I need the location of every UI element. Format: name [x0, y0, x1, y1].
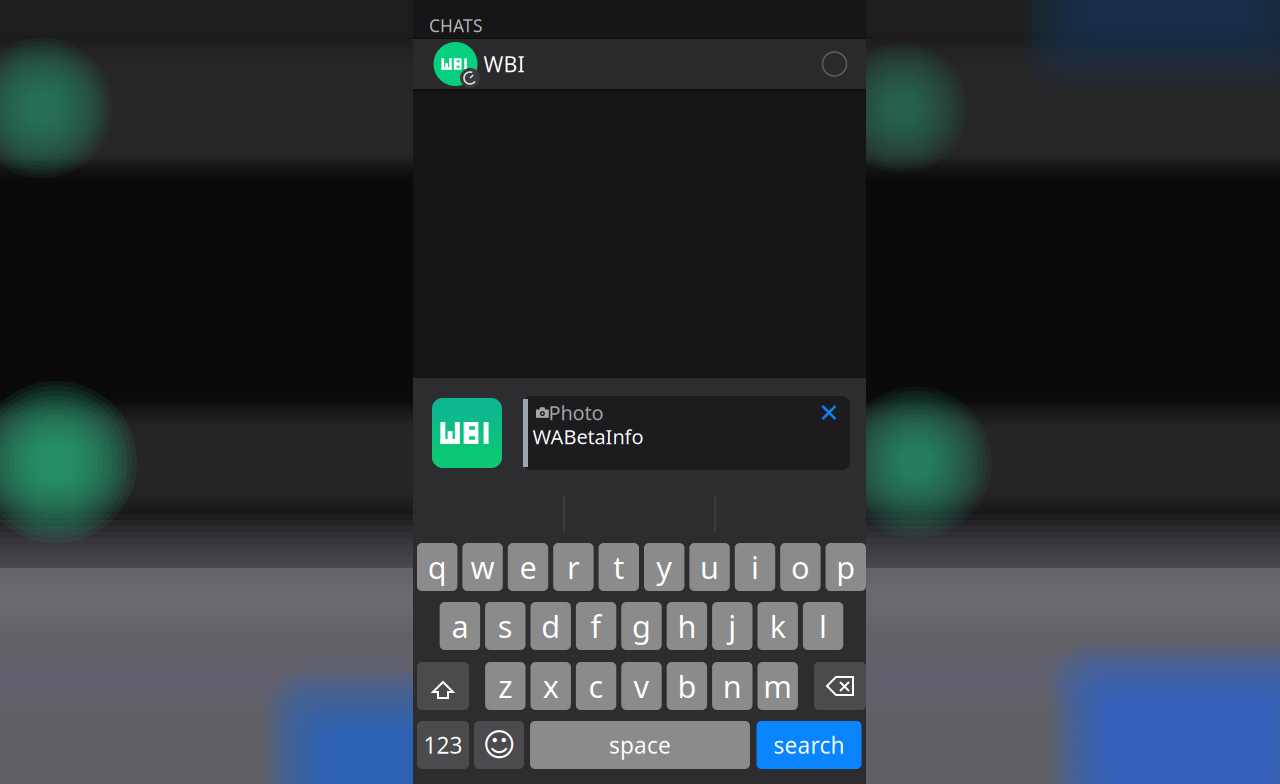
button[interactable]: m: [757, 662, 798, 710]
staticText: g: [632, 606, 651, 646]
button[interactable]: x: [530, 662, 571, 710]
button[interactable]: z: [485, 662, 525, 710]
button[interactable]: j: [712, 602, 752, 650]
button[interactable]: u: [689, 543, 730, 591]
staticText: 123: [423, 730, 462, 760]
button[interactable]: w: [462, 543, 503, 591]
button[interactable]: i: [735, 543, 775, 591]
staticText: k: [770, 606, 786, 646]
button[interactable]: r: [553, 543, 594, 591]
staticText: ✕: [818, 399, 839, 427]
staticText: WBI: [483, 50, 524, 78]
button[interactable]: Remove attachment: [814, 398, 844, 428]
staticText: d: [541, 606, 560, 646]
staticText: p: [836, 547, 855, 587]
button[interactable]: q: [417, 543, 457, 591]
button[interactable]: g: [621, 602, 662, 650]
staticText: n: [723, 666, 742, 706]
staticText: i: [751, 547, 759, 587]
staticText: t: [613, 547, 624, 587]
staticText: ☺: [482, 727, 515, 763]
staticText: a: [451, 606, 468, 646]
staticText: z: [498, 666, 512, 706]
button[interactable]: s: [485, 602, 525, 650]
button[interactable]: k: [757, 602, 798, 650]
staticText: Photo: [548, 399, 603, 426]
button[interactable]: c: [576, 662, 616, 710]
staticText: CHATS: [429, 14, 483, 37]
staticText: w: [471, 547, 495, 587]
button[interactable]: Emoji: [474, 721, 524, 769]
button[interactable]: l: [803, 602, 843, 650]
staticText: b: [677, 666, 696, 706]
button[interactable]: y: [644, 543, 684, 591]
button[interactable]: d: [530, 602, 571, 650]
staticText: WABetaInfo: [532, 423, 643, 450]
button[interactable]: n: [712, 662, 752, 710]
staticText: o: [791, 547, 810, 587]
button[interactable]: Delete: [814, 662, 866, 710]
staticText: search: [773, 730, 844, 760]
staticText: q: [428, 547, 447, 587]
staticText: l: [819, 606, 827, 646]
button[interactable]: b: [667, 662, 707, 710]
button[interactable]: a: [440, 602, 480, 650]
button[interactable]: WBI: [413, 39, 866, 89]
button[interactable]: search: [756, 721, 861, 769]
button[interactable]: o: [780, 543, 821, 591]
staticText: e: [519, 547, 536, 587]
staticText: f: [591, 606, 602, 646]
staticText: r: [567, 547, 580, 587]
staticText: v: [633, 666, 649, 706]
button[interactable]: t: [599, 543, 639, 591]
button[interactable]: space: [530, 721, 750, 769]
button[interactable]: h: [667, 602, 707, 650]
button[interactable]: v: [621, 662, 662, 710]
staticText: y: [656, 547, 672, 587]
staticText: space: [609, 730, 671, 760]
staticText: m: [763, 666, 792, 706]
staticText: x: [543, 666, 559, 706]
button[interactable]: f: [576, 602, 616, 650]
staticText: u: [700, 547, 719, 587]
button[interactable]: 123: [417, 721, 469, 769]
staticText: h: [677, 606, 696, 646]
staticText: j: [728, 606, 736, 646]
staticText: c: [589, 666, 604, 706]
button[interactable]: e: [508, 543, 548, 591]
staticText: s: [498, 606, 513, 646]
button[interactable]: Shift: [417, 662, 469, 710]
button[interactable]: p: [826, 543, 866, 591]
